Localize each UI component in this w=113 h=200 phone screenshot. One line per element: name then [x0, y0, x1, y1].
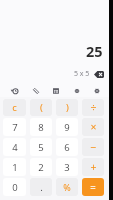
button[interactable]: c — [3, 99, 26, 116]
button[interactable]: % — [56, 178, 78, 196]
staticText: ( — [40, 101, 43, 114]
staticText: 7 — [12, 121, 18, 134]
button[interactable]: History — [9, 85, 20, 96]
button[interactable]: 0 — [3, 178, 26, 196]
button[interactable]: Theme — [71, 85, 82, 96]
button[interactable]: 1 — [3, 158, 26, 176]
staticText: % — [63, 181, 71, 193]
staticText: ÷ — [90, 101, 97, 115]
staticText: 4 — [12, 141, 18, 154]
button[interactable]: ) — [56, 99, 78, 116]
staticText: 8 — [38, 121, 44, 134]
button[interactable]: Calculator — [50, 85, 61, 96]
button[interactable]: 5 — [30, 138, 52, 156]
button[interactable]: ÷ — [82, 99, 104, 116]
staticText: ) — [66, 101, 69, 114]
button[interactable]: 7 — [3, 118, 26, 136]
staticText: 3 — [64, 161, 70, 174]
button[interactable]: Unit converter — [30, 85, 41, 96]
button[interactable]: 2 — [30, 158, 52, 176]
staticText: 1 — [12, 161, 18, 174]
button[interactable]: 4 — [3, 138, 26, 156]
staticText: = — [90, 181, 96, 194]
staticText: . — [40, 181, 43, 194]
button[interactable]: 9 — [56, 118, 78, 136]
button[interactable]: × — [82, 118, 104, 136]
staticText: 9 — [64, 121, 70, 134]
staticText: − — [90, 140, 97, 154]
button[interactable]: . — [30, 178, 52, 196]
staticText: 2 — [38, 161, 44, 174]
button[interactable]: Backspace — [94, 70, 104, 78]
staticText: 5 x 5 — [74, 69, 90, 79]
staticText: 25 — [86, 41, 103, 61]
staticText: 6 — [64, 141, 70, 154]
staticText: c — [12, 101, 17, 114]
button[interactable]: − — [82, 138, 104, 156]
button[interactable]: 6 — [56, 138, 78, 156]
button[interactable]: Settings — [91, 85, 102, 96]
button[interactable]: ( — [30, 99, 52, 116]
button[interactable]: = — [82, 178, 104, 196]
button[interactable]: 8 — [30, 118, 52, 136]
staticText: + — [90, 160, 97, 174]
button[interactable]: + — [82, 158, 104, 176]
staticText: 0 — [12, 181, 18, 194]
staticText: 5 — [38, 141, 44, 154]
staticText: × — [90, 120, 97, 134]
button[interactable]: 3 — [56, 158, 78, 176]
